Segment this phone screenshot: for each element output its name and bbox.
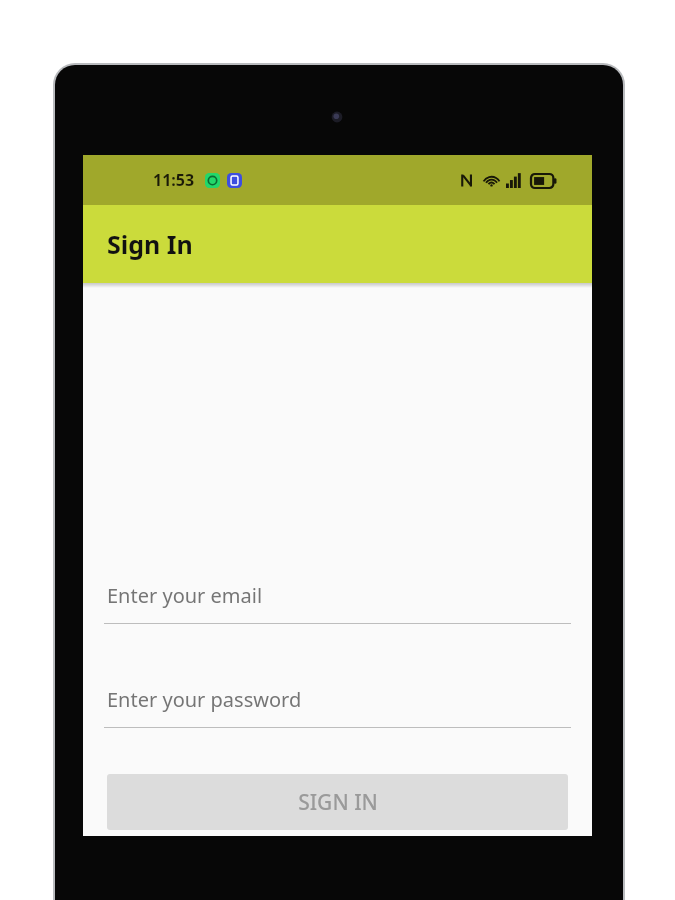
button[interactable]: Enter your password bbox=[104, 686, 571, 728]
staticText: Sign In bbox=[107, 227, 193, 261]
staticText: Enter your password bbox=[107, 686, 302, 713]
button[interactable]: Enter your email bbox=[104, 582, 571, 624]
staticText: 11:53 bbox=[153, 169, 195, 191]
staticText: SIGN IN bbox=[298, 788, 378, 817]
button[interactable]: SIGN IN bbox=[107, 774, 568, 830]
staticText: Enter your email bbox=[107, 582, 263, 609]
